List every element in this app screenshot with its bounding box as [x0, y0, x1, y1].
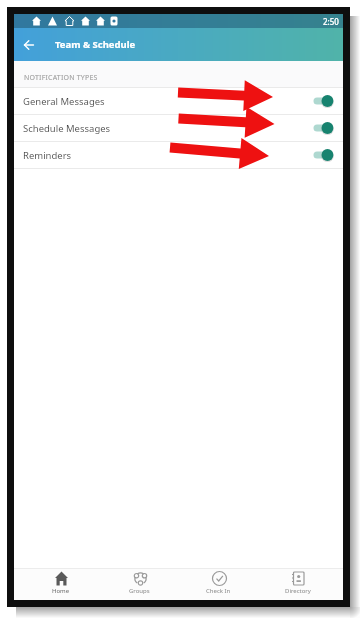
staticText: Home: [52, 587, 70, 595]
button[interactable]: [309, 142, 343, 168]
staticText: Groups: [129, 587, 150, 595]
staticText: 2:50: [323, 16, 339, 27]
button[interactable]: [309, 88, 343, 114]
button[interactable]: Groups: [100, 569, 179, 600]
button[interactable]: [18, 34, 39, 55]
staticText: Directory: [285, 587, 311, 595]
button[interactable]: Check In: [179, 569, 258, 600]
staticText: Check In: [206, 587, 231, 595]
button[interactable]: Directory: [258, 569, 337, 600]
staticText: Team & Schedule: [55, 38, 136, 51]
staticText: Reminders: [23, 149, 309, 162]
staticText: General Messages: [23, 95, 309, 108]
button[interactable]: General Messages: [14, 88, 343, 114]
staticText: NOTIFICATION TYPES: [24, 73, 98, 83]
button[interactable]: Schedule Messages: [14, 115, 343, 141]
staticText: Schedule Messages: [23, 122, 309, 135]
button[interactable]: Reminders: [14, 142, 343, 168]
button[interactable]: [309, 115, 343, 141]
button[interactable]: Home: [22, 569, 100, 600]
